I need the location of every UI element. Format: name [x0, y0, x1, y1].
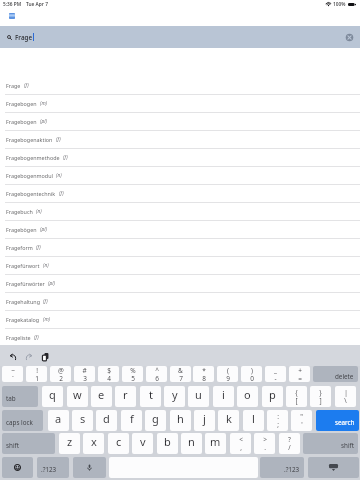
button[interactable]: ~ [2, 366, 23, 382]
button[interactable]: v [132, 433, 153, 454]
button[interactable]: Undo [5, 349, 20, 363]
button[interactable]: Fragebogenmethode [0, 149, 360, 167]
button[interactable]: { [286, 386, 307, 407]
button[interactable]: # [74, 366, 95, 382]
button[interactable]: t [140, 386, 161, 407]
button[interactable]: .?123 [37, 457, 69, 478]
staticText: x [91, 434, 97, 449]
button[interactable]: } [310, 386, 331, 407]
button[interactable]: Dictation [73, 457, 106, 478]
button[interactable]: > [254, 433, 275, 454]
button[interactable]: a [48, 410, 69, 431]
button[interactable]: h [170, 410, 191, 431]
button[interactable]: search [316, 410, 359, 431]
staticText: tab [6, 394, 16, 403]
button[interactable]: x [83, 433, 104, 454]
staticText: 8 [202, 374, 206, 382]
button[interactable]: Show sidebar [9, 13, 15, 19]
button[interactable]: _ [265, 366, 286, 382]
staticText: t [149, 387, 153, 402]
button[interactable]: | [335, 386, 356, 407]
button[interactable]: .?123 [260, 457, 304, 478]
button[interactable]: delete [313, 366, 358, 382]
button[interactable]: ) [241, 366, 262, 382]
button[interactable]: p [262, 386, 283, 407]
staticText: " [300, 412, 303, 421]
button[interactable]: l [243, 410, 264, 431]
button[interactable]: Clear text [345, 33, 354, 42]
button[interactable]: m [205, 433, 226, 454]
button[interactable]: : [267, 410, 288, 431]
button[interactable]: s [72, 410, 93, 431]
button[interactable]: Fragekatalog [0, 311, 360, 329]
staticText: h [177, 411, 184, 426]
button[interactable]: w [67, 386, 88, 407]
staticText: 9 [226, 374, 230, 382]
button[interactable]: g [145, 410, 166, 431]
staticText: Fragebogen [6, 118, 37, 125]
staticText: | [344, 388, 348, 397]
staticText: delete [335, 372, 354, 381]
button[interactable]: ? [279, 433, 300, 454]
staticText: (pl) [40, 226, 47, 233]
staticText: > [263, 435, 267, 444]
button[interactable]: r [115, 386, 136, 407]
button[interactable]: Hide keyboard [308, 457, 359, 478]
staticText: , [240, 443, 242, 452]
button[interactable]: Fragebogen [0, 95, 360, 113]
button[interactable]: Fragebogenaktion [0, 131, 360, 149]
button[interactable]: Emoji [2, 457, 33, 478]
button[interactable]: shift [2, 433, 55, 454]
button[interactable]: " [291, 410, 312, 431]
button[interactable]: Fragehaltung [0, 293, 360, 311]
staticText: ; [277, 420, 279, 429]
button[interactable]: k [218, 410, 239, 431]
button[interactable]: Frageliste [0, 329, 360, 347]
button[interactable]: b [157, 433, 178, 454]
staticText: (m) [40, 100, 47, 107]
button[interactable]: Fragebogenmodul [0, 167, 360, 185]
button[interactable]: * [193, 366, 214, 382]
button[interactable]: caps lock [2, 410, 43, 431]
button[interactable]: Paste [37, 349, 52, 363]
button[interactable]: n [181, 433, 202, 454]
button[interactable]: o [237, 386, 258, 407]
button[interactable]: $ [98, 366, 119, 382]
button[interactable]: f [121, 410, 142, 431]
button[interactable]: u [188, 386, 209, 407]
button[interactable]: d [96, 410, 117, 431]
staticText: # [82, 366, 87, 375]
staticText: shift [341, 441, 354, 450]
button[interactable]: tab [2, 386, 38, 407]
button[interactable]: q [42, 386, 63, 407]
button[interactable]: Redo [21, 349, 36, 363]
button[interactable]: @ [50, 366, 71, 382]
staticText: l [252, 411, 255, 426]
button[interactable]: Frage [0, 77, 360, 95]
button[interactable]: Fragebuch [0, 203, 360, 221]
button[interactable]: shift [303, 433, 358, 454]
button[interactable]: j [194, 410, 215, 431]
button[interactable]: ( [217, 366, 238, 382]
button[interactable]: e [91, 386, 112, 407]
staticText: c [116, 434, 122, 449]
button[interactable]: ! [26, 366, 47, 382]
staticText: - [274, 374, 277, 382]
staticText: (f) [59, 190, 64, 197]
button[interactable]: Fragebögen [0, 221, 360, 239]
button[interactable]: ^ [146, 366, 167, 382]
button[interactable]: < [230, 433, 251, 454]
button[interactable]: + [289, 366, 310, 382]
button[interactable]: Fragebogentechnik [0, 185, 360, 203]
button[interactable]: z [59, 433, 80, 454]
button[interactable]: Fragebogen [0, 113, 360, 131]
button[interactable]: % [122, 366, 143, 382]
button[interactable]: i [213, 386, 234, 407]
button[interactable]: Frageform [0, 239, 360, 257]
button[interactable]: Fragefürwort [0, 257, 360, 275]
button[interactable]: Fragefürwörter [0, 275, 360, 293]
button[interactable]: c [108, 433, 129, 454]
button[interactable]: & [170, 366, 191, 382]
button[interactable]: y [164, 386, 185, 407]
